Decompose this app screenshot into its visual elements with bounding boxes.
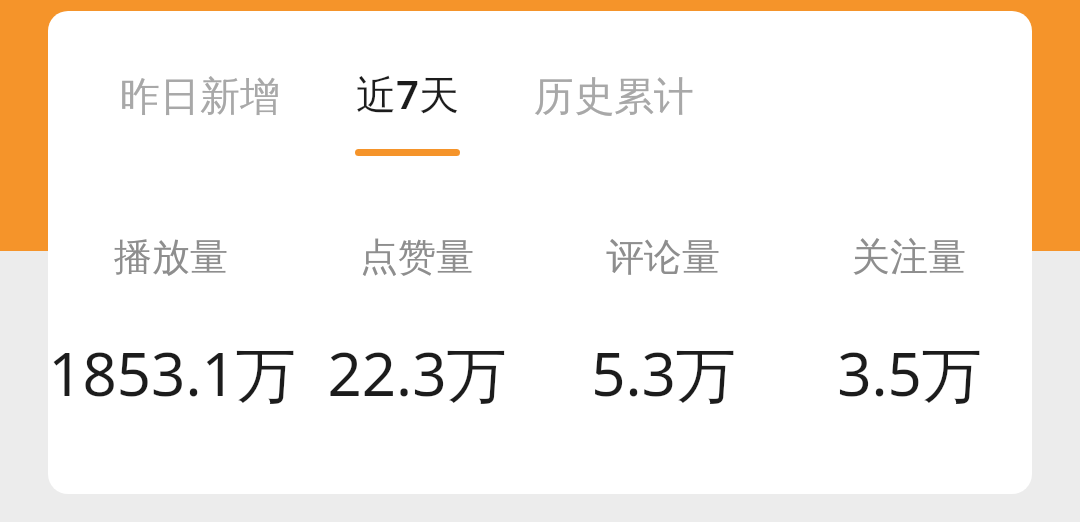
button[interactable]: 近7天 (347, 50, 468, 172)
staticText: 近7天 (356, 66, 459, 121)
button[interactable]: 关注量 (786, 211, 1032, 461)
button[interactable]: 历史累计 (526, 55, 702, 172)
staticText: 点赞量 (360, 233, 474, 281)
button[interactable]: 评论量 (540, 211, 786, 461)
button[interactable]: 点赞量 (294, 211, 540, 461)
staticText: 播放量 (114, 233, 228, 281)
staticText: 历史累计 (534, 71, 694, 121)
staticText: 关注量 (852, 233, 966, 281)
button[interactable]: 昨日新增 (112, 55, 288, 172)
staticText: 1853.1万 (48, 332, 294, 414)
staticText: 5.3万 (591, 332, 736, 414)
staticText: 22.3万 (327, 332, 507, 414)
button[interactable]: 播放量 (48, 211, 294, 461)
staticText: 评论量 (606, 233, 720, 281)
staticText: 3.5万 (837, 332, 982, 414)
staticText: 昨日新增 (120, 71, 280, 121)
